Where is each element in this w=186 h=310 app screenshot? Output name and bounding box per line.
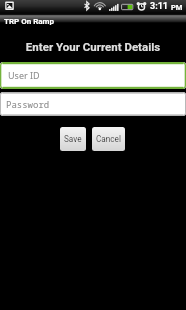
staticText: User ID [8,69,40,81]
staticText: Enter Your Current Details [0,40,186,53]
staticText: Cancel [96,134,121,144]
button[interactable]: User ID [0,62,186,89]
staticText: TRP On Ramp [4,17,55,26]
staticText: 3:11 [150,1,169,12]
staticText: Save [64,134,82,144]
button[interactable]: Save [60,127,86,151]
button[interactable]: Password [0,92,186,116]
staticText: PM [171,3,183,12]
staticText: Password [6,98,50,110]
button[interactable]: Cancel [92,127,125,151]
